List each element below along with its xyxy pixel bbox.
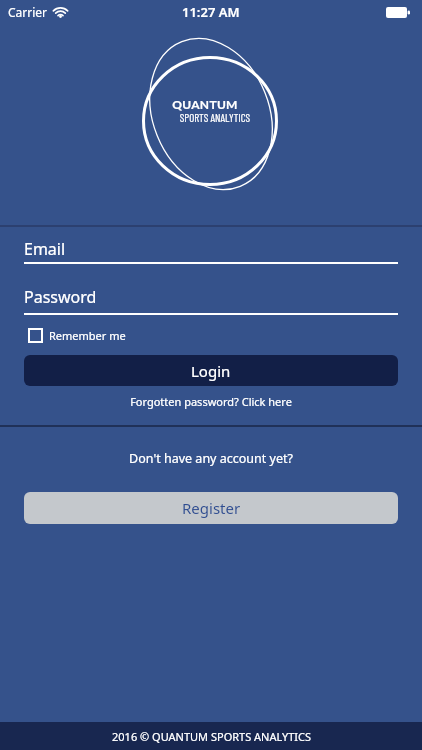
staticText: 11:27 AM <box>182 3 240 21</box>
button[interactable]: Forgotten password? Click here <box>0 394 422 409</box>
staticText: Register <box>182 498 241 518</box>
staticText: SPORTS ANALYTICS <box>4 111 422 124</box>
staticText: Email <box>24 238 66 260</box>
staticText: Don't have any account yet? <box>0 450 422 467</box>
staticText: 2016 © QUANTUM SPORTS ANALYTICS <box>112 729 311 744</box>
button[interactable]: Login <box>24 355 398 386</box>
staticText: QUANTUM <box>0 97 416 111</box>
staticText: Carrier <box>8 4 48 20</box>
button[interactable]: Remember me <box>28 328 126 343</box>
staticText: Remember me <box>49 328 126 343</box>
staticText: Login <box>191 361 231 381</box>
staticText: Password <box>24 286 97 308</box>
button[interactable]: Register <box>24 492 398 524</box>
